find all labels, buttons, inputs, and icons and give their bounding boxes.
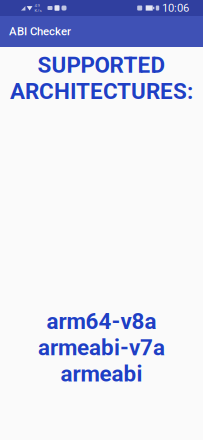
staticText: armeabi <box>60 361 142 387</box>
staticText: SUPPORTED <box>37 52 165 78</box>
staticText: ABI Checker <box>9 25 71 38</box>
staticText: armeabi-v7a <box>38 334 165 361</box>
staticText: ARCHITECTURES: <box>10 78 193 104</box>
staticText: 10:06 <box>162 1 189 14</box>
staticText: 4.9 K/s <box>34 3 41 13</box>
staticText: arm64-v8a <box>46 308 156 334</box>
